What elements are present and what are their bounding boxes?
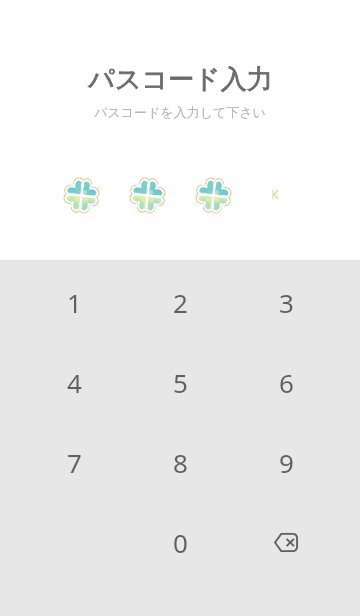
button[interactable]: 1: [21, 262, 127, 342]
staticText: 7: [67, 445, 82, 480]
button[interactable]: 5: [127, 342, 233, 422]
staticText: 2: [173, 285, 188, 320]
staticText: 1: [67, 285, 82, 320]
button[interactable]: 9: [233, 422, 339, 502]
staticText: パスコード入力: [88, 63, 273, 96]
button[interactable]: 8: [127, 422, 233, 502]
staticText: 3: [279, 285, 294, 320]
button[interactable]: 4: [21, 342, 127, 422]
button[interactable]: 7: [21, 422, 127, 502]
staticText: 8: [173, 445, 188, 480]
staticText: パスコード入力: [88, 63, 273, 96]
button[interactable]: 0: [127, 502, 233, 582]
button[interactable]: Backspace: [233, 502, 339, 582]
staticText: 5: [173, 365, 188, 400]
staticText: 4: [67, 365, 82, 400]
staticText: 0: [173, 525, 188, 560]
staticText: パスコードを入力して下さい: [94, 104, 266, 120]
button[interactable]: 3: [233, 262, 339, 342]
staticText: 6: [279, 365, 294, 400]
staticText: 9: [279, 445, 294, 480]
button[interactable]: 2: [127, 262, 233, 342]
button[interactable]: 6: [233, 342, 339, 422]
